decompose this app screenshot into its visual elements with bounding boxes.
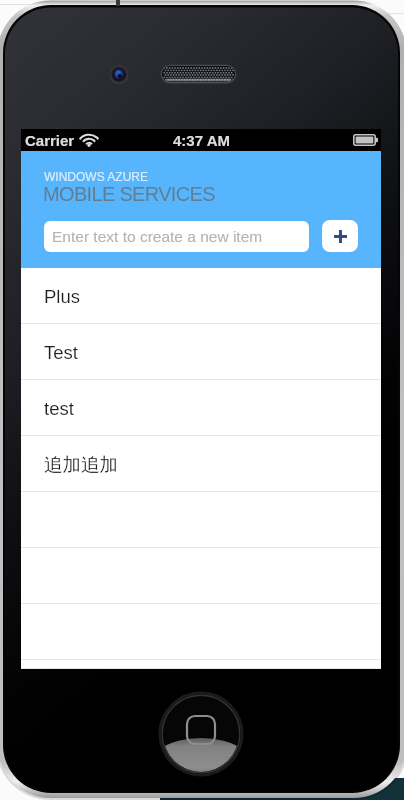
staticText: WINDOWS AZURE xyxy=(44,170,148,183)
button[interactable] xyxy=(21,660,381,669)
button[interactable]: Add item xyxy=(322,220,358,252)
button[interactable] xyxy=(21,492,381,548)
staticText: Test xyxy=(44,342,78,363)
staticText: Enter text to create a new item xyxy=(52,228,263,245)
staticText: test xyxy=(44,398,74,419)
staticText: 追加追加 xyxy=(44,453,118,476)
staticText: MOBILE SERVICES xyxy=(43,183,215,205)
staticText: Carrier xyxy=(25,132,75,149)
button[interactable]: Test xyxy=(21,324,381,380)
button[interactable] xyxy=(21,604,381,660)
button[interactable] xyxy=(21,548,381,604)
button[interactable]: Plus xyxy=(21,268,381,324)
staticText: Plus xyxy=(44,286,80,307)
staticText: 4:37 AM xyxy=(173,132,230,149)
button[interactable]: test xyxy=(21,380,381,436)
button[interactable]: Enter text to create a new item xyxy=(44,221,309,252)
button[interactable]: 追加追加 xyxy=(21,436,381,492)
